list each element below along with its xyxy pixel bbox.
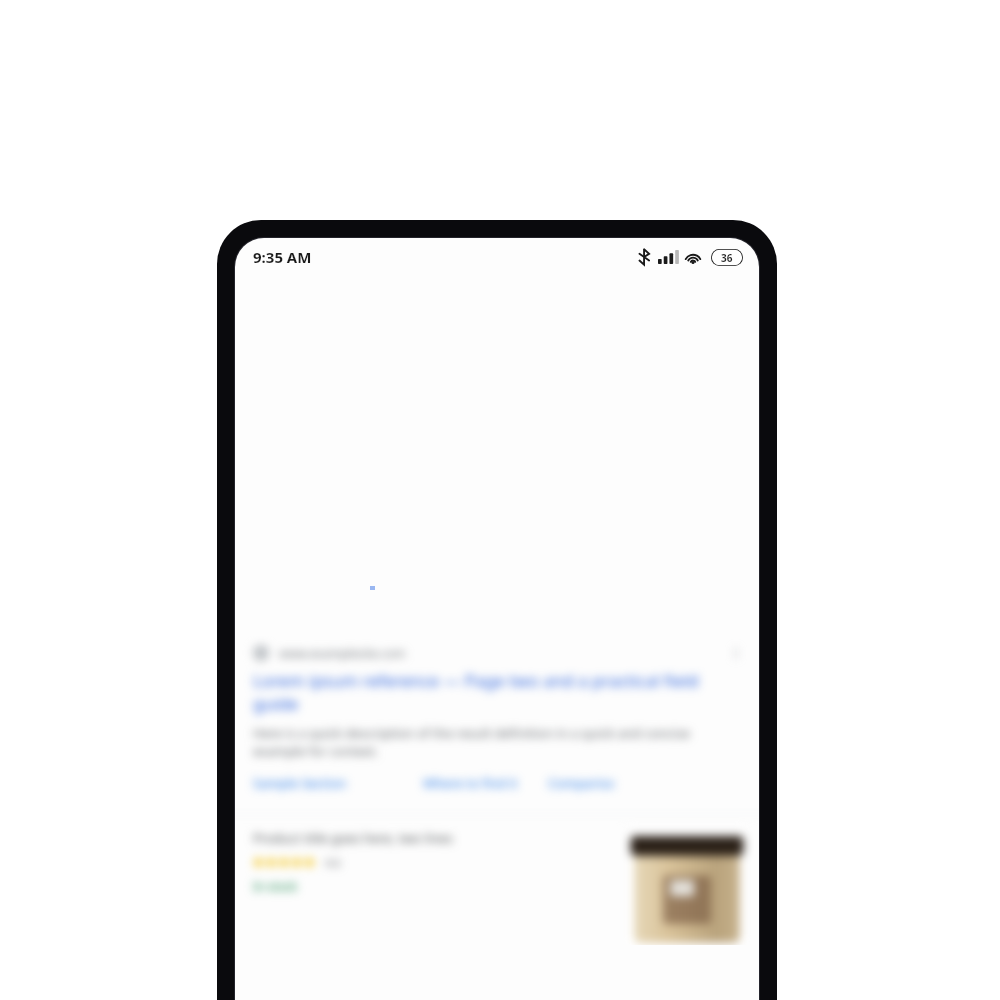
- button[interactable]: Product title goes here, two lines: [235, 829, 759, 945]
- staticText: Lorem ipsum reference — Page two and a p…: [253, 669, 745, 715]
- button[interactable]: www.examplesite.com: [235, 636, 759, 814]
- staticText: 9:35 AM: [253, 247, 312, 267]
- staticText: 4.6: [325, 855, 341, 870]
- staticText: Product title goes here, two lines: [253, 829, 453, 847]
- button[interactable]: Comparison with: [548, 774, 615, 792]
- staticText: Where to find it: [423, 774, 518, 792]
- staticText: Comparison with: [548, 774, 615, 792]
- staticText: Here is a quick description of the resul…: [253, 724, 745, 760]
- staticText: Sample Section: [253, 774, 347, 792]
- staticText: In stock: [253, 878, 298, 894]
- staticText: 36: [721, 251, 733, 265]
- button[interactable]: Where to find it: [423, 774, 526, 792]
- button[interactable]: Sample Section: [253, 774, 401, 792]
- staticText: www.examplesite.com: [279, 645, 406, 661]
